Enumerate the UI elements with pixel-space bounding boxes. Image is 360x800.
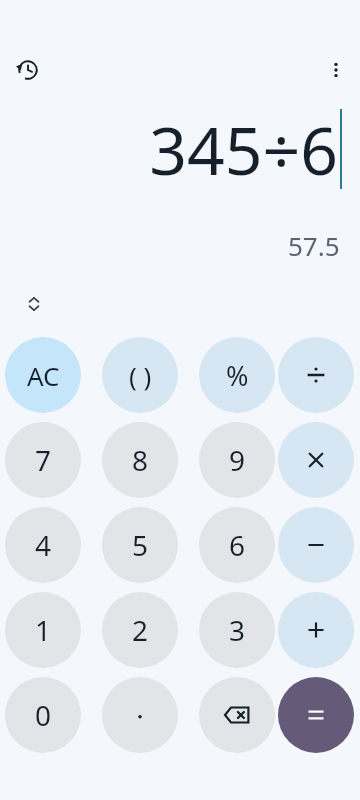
button[interactable]: 4 [5, 507, 81, 583]
staticText: 4 [35, 526, 52, 564]
staticText: 3 [229, 611, 246, 649]
button[interactable]: 2 [102, 592, 178, 668]
staticText: % [226, 357, 249, 394]
button[interactable]: Add [278, 592, 354, 668]
button[interactable]: 8 [102, 422, 178, 498]
button[interactable]: 9 [199, 422, 275, 498]
staticText: 345÷6 [149, 104, 338, 194]
button[interactable]: Expand [16, 286, 52, 322]
button[interactable]: 7 [5, 422, 81, 498]
staticText: 8 [132, 441, 149, 479]
button[interactable]: % [199, 337, 275, 413]
button[interactable]: 1 [5, 592, 81, 668]
staticText: 57.5 [288, 228, 340, 263]
staticText: 1 [35, 611, 52, 649]
button[interactable]: Multiply [278, 422, 354, 498]
staticText: 0 [35, 696, 52, 734]
staticText: AC [27, 358, 60, 393]
button[interactable]: 3 [199, 592, 275, 668]
button[interactable]: Subtract [278, 507, 354, 583]
staticText: ( ) [129, 358, 152, 393]
button[interactable]: Divide [278, 337, 354, 413]
button[interactable]: 0 [5, 677, 81, 753]
button[interactable]: ( ) [102, 337, 178, 413]
staticText: 5 [132, 526, 149, 564]
button[interactable]: AC [5, 337, 81, 413]
staticText: 6 [229, 526, 246, 564]
button[interactable]: 6 [199, 507, 275, 583]
staticText: 2 [132, 611, 149, 649]
button[interactable]: History [10, 52, 46, 88]
button[interactable]: Backspace [199, 677, 275, 753]
button[interactable]: Decimal point [102, 677, 178, 753]
button[interactable]: Equals [278, 677, 354, 753]
button[interactable]: 5 [102, 507, 178, 583]
staticText: 9 [229, 441, 246, 479]
staticText: 7 [35, 441, 52, 479]
button[interactable]: More options [318, 52, 354, 88]
